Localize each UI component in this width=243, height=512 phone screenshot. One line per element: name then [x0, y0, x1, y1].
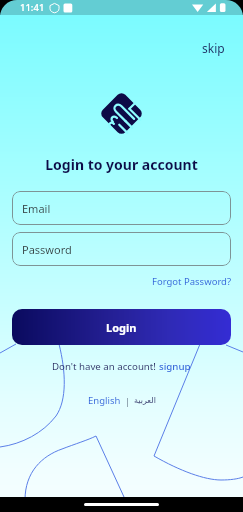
staticText: 11:41 — [20, 1, 45, 14]
staticText: signup — [159, 360, 191, 373]
button[interactable]: English — [84, 394, 125, 407]
staticText: English — [88, 394, 121, 407]
button[interactable]: Password — [12, 232, 231, 266]
staticText: skip — [202, 40, 225, 56]
staticText: العربية — [134, 396, 156, 405]
staticText: Login — [106, 320, 137, 335]
button[interactable]: Login — [12, 309, 231, 345]
staticText: Email — [22, 201, 51, 216]
button[interactable]: Email — [12, 191, 231, 225]
button[interactable]: العربية — [130, 396, 160, 405]
button[interactable]: signup — [159, 360, 191, 373]
button[interactable]: Forgot Password? — [148, 272, 236, 291]
staticText: Password — [22, 242, 72, 257]
staticText: | — [125, 395, 130, 407]
staticText: Login to your account — [0, 155, 243, 174]
staticText: Don't have an account! — [52, 360, 159, 373]
button[interactable]: skip — [196, 36, 231, 60]
staticText: Forgot Password? — [152, 275, 232, 288]
